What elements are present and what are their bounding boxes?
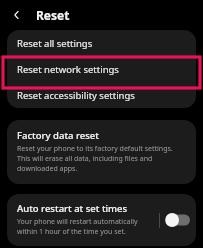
button[interactable]: Reset all settings [7, 30, 196, 56]
staticText: Reset accessibility settings [17, 89, 135, 102]
staticText: Reset your phone to its factory default … [17, 144, 186, 174]
staticText: Reset network settings [17, 63, 119, 76]
staticText: Auto restart at set times [17, 202, 128, 215]
button[interactable]: Reset accessibility settings [7, 82, 196, 108]
button[interactable]: Factory data reset [7, 120, 196, 184]
staticText: Your phone will restart automatically wi… [17, 217, 155, 237]
button[interactable]: Auto restart at set times toggle [166, 211, 190, 229]
button[interactable]: Reset network settings [7, 56, 196, 82]
staticText: Reset [36, 7, 70, 23]
button[interactable]: Auto restart at set times [7, 194, 159, 246]
staticText: Reset all settings [17, 37, 93, 50]
button[interactable]: Back [4, 2, 30, 28]
staticText: Factory data reset [17, 129, 99, 142]
